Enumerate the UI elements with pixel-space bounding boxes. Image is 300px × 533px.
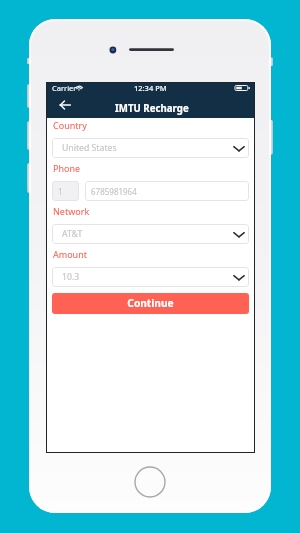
staticText: Amount bbox=[53, 248, 87, 260]
staticText: 6785981964 bbox=[91, 186, 137, 197]
staticText: United States bbox=[62, 142, 117, 154]
button[interactable]: 10.3 bbox=[52, 267, 249, 287]
staticText: Continue bbox=[127, 296, 174, 310]
staticText: Carrier bbox=[52, 83, 77, 93]
button[interactable]: AT&T bbox=[52, 224, 249, 244]
button[interactable]: Continue bbox=[52, 293, 249, 314]
staticText: 1 bbox=[58, 186, 63, 197]
staticText: Network bbox=[53, 205, 90, 217]
button[interactable]: Back bbox=[58, 97, 76, 113]
staticText: IMTU Recharge bbox=[115, 102, 189, 115]
staticText: Phone bbox=[53, 162, 81, 174]
button[interactable]: United States bbox=[52, 138, 249, 158]
staticText: 10.3 bbox=[62, 271, 80, 283]
staticText: Country bbox=[53, 119, 87, 131]
button[interactable]: 6785981964 bbox=[85, 181, 249, 201]
button[interactable]: 1 bbox=[52, 181, 79, 201]
staticText: AT&T bbox=[62, 228, 83, 240]
staticText: 12:34 PM bbox=[134, 83, 167, 93]
